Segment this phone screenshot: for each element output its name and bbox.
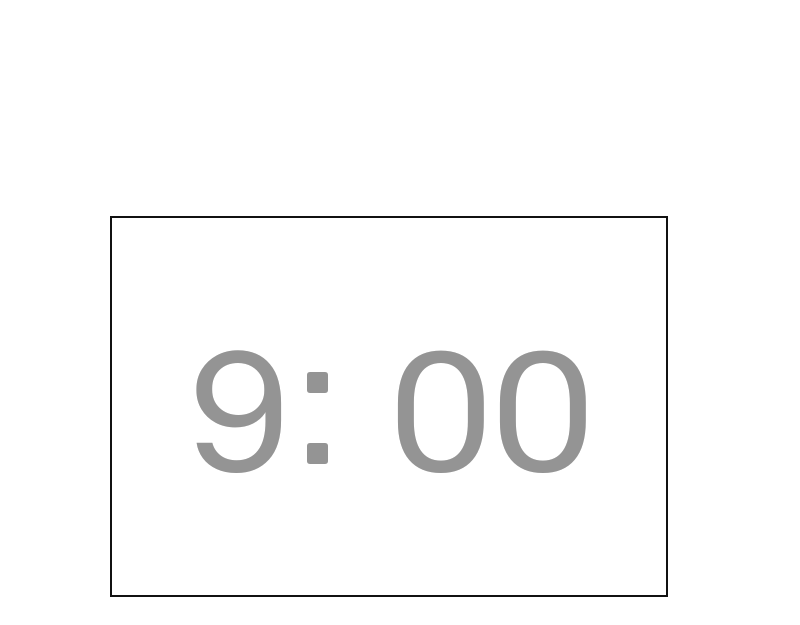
staticText: 0 — [387, 309, 495, 514]
staticText: 9 — [186, 309, 293, 514]
staticText: 0 — [489, 309, 597, 514]
button[interactable]: Clock face showing 9:00 — [110, 216, 668, 597]
